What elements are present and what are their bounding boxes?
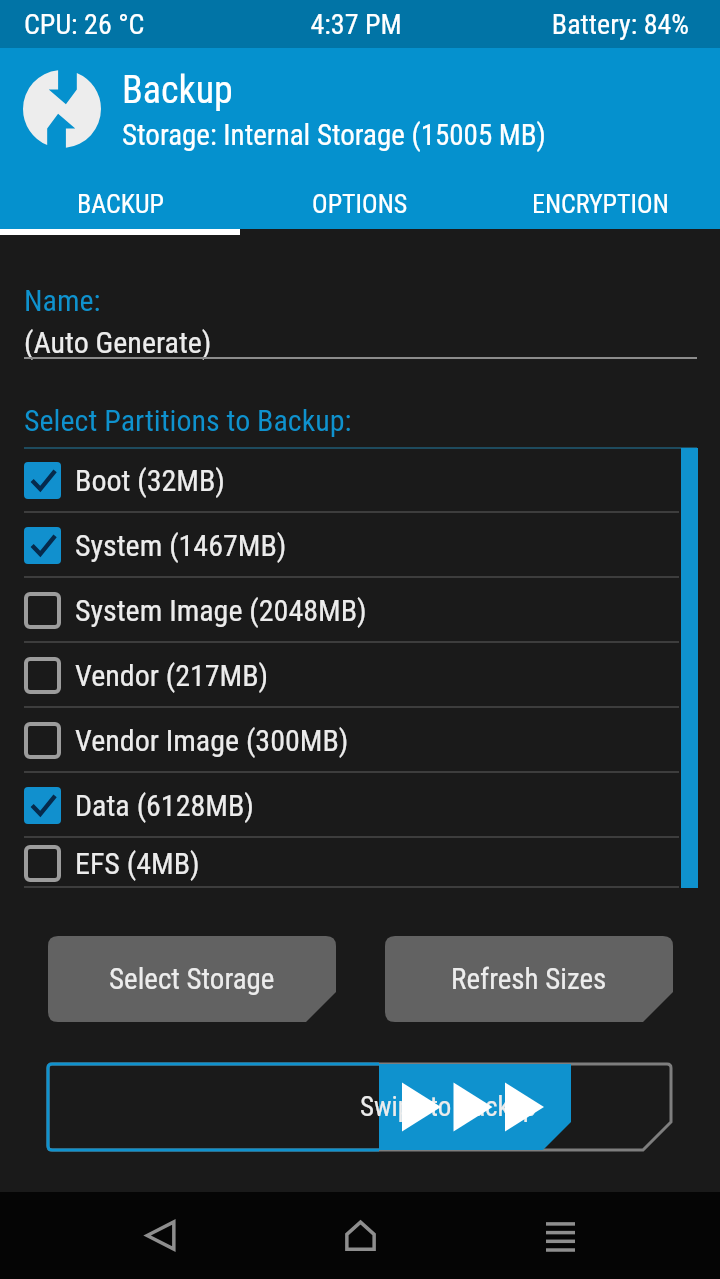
staticText: System (1467MB) xyxy=(75,528,287,563)
staticText: Data (6128MB) xyxy=(75,788,254,823)
staticText: BACKUP xyxy=(77,189,164,219)
button[interactable]: Menu xyxy=(500,1192,620,1279)
button[interactable]: System Image (2048MB) xyxy=(0,578,720,643)
button[interactable]: Refresh Sizes xyxy=(385,936,673,1022)
staticText: Battery: 84% xyxy=(467,8,689,41)
button[interactable]: ENCRYPTION xyxy=(480,177,720,231)
staticText: Boot (32MB) xyxy=(75,463,225,498)
staticText: EFS (4MB) xyxy=(75,846,200,881)
button[interactable]: OPTIONS xyxy=(240,177,480,231)
staticText: OPTIONS xyxy=(312,189,408,219)
staticText: Vendor Image (300MB) xyxy=(75,723,349,758)
button[interactable]: System (1467MB) xyxy=(0,513,720,578)
button[interactable]: Select Storage xyxy=(48,936,336,1022)
staticText: Swipe to Backup xyxy=(360,1091,537,1123)
button[interactable]: Back xyxy=(100,1192,220,1279)
staticText: Refresh Sizes xyxy=(451,962,607,996)
staticText: Select Partitions to Backup: xyxy=(24,403,352,438)
staticText: (Auto Generate) xyxy=(24,325,212,360)
button[interactable]: Swipe to Backup xyxy=(48,1064,671,1150)
button[interactable]: Vendor (217MB) xyxy=(0,643,720,708)
staticText: CPU: 26 °C xyxy=(24,8,245,41)
staticText: Select Storage xyxy=(109,962,275,996)
button[interactable]: BACKUP xyxy=(0,177,240,231)
button[interactable]: EFS (4MB) xyxy=(0,838,720,888)
staticText: Backup xyxy=(122,68,233,113)
button[interactable]: Home xyxy=(300,1192,420,1279)
staticText: Storage: Internal Storage (15005 MB) xyxy=(122,118,546,152)
button[interactable]: Data (6128MB) xyxy=(0,773,720,838)
staticText: 4:37 PM xyxy=(245,8,467,41)
staticText: System Image (2048MB) xyxy=(75,593,367,628)
staticText: Name: xyxy=(24,283,101,318)
staticText: ENCRYPTION xyxy=(532,189,669,219)
staticText: Vendor (217MB) xyxy=(75,658,269,693)
button[interactable]: Vendor Image (300MB) xyxy=(0,708,720,773)
button[interactable]: Boot (32MB) xyxy=(0,448,720,513)
